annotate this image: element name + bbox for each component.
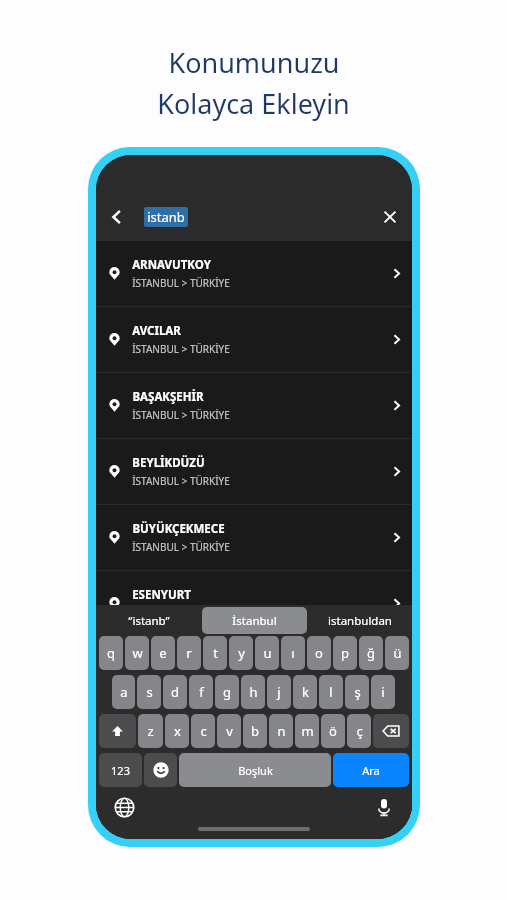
button[interactable]: 123 [99,753,142,787]
staticText: t [213,644,218,662]
button[interactable]: a [112,675,135,709]
button[interactable]: q [99,636,123,670]
staticText: BEYLİKDÜZÜ [132,455,205,471]
staticText: n [277,722,286,740]
staticText: Boşluk [238,763,273,778]
staticText: c [200,722,207,740]
button[interactable]: ş [345,675,369,709]
staticText: y [238,644,245,662]
button[interactable]: u [255,636,279,670]
button[interactable]: Ara [333,753,409,787]
staticText: AVCILAR [132,323,181,339]
button[interactable]: ü [385,636,409,670]
staticText: Ara [362,763,380,778]
button[interactable]: g [215,675,239,709]
button[interactable]: BEYLİKDÜZÜ [96,439,412,504]
staticText: h [249,683,258,701]
staticText: p [341,644,349,662]
button[interactable]: İstanbul [202,607,307,634]
staticText: İSTANBUL > TÜRKİYE [132,474,230,488]
staticText: w [132,644,143,662]
button[interactable]: Shift [99,714,136,748]
button[interactable]: ı [281,636,305,670]
staticText: İSTANBUL > TÜRKİYE [132,342,230,356]
button[interactable]: istanb [138,193,368,241]
button[interactable]: r [177,636,201,670]
button[interactable]: c [191,714,215,748]
button[interactable]: ESENYURT [96,571,412,636]
button[interactable]: Boşluk [179,753,331,787]
button[interactable]: Clear [368,193,412,241]
button[interactable]: AVCILAR [96,307,412,372]
button[interactable]: k [293,675,317,709]
staticText: 123 [111,763,130,778]
button[interactable]: x [165,714,189,748]
staticText: z [147,722,154,740]
button[interactable]: Voice input [370,793,398,821]
staticText: f [199,683,204,701]
staticText: BÜYÜKÇEKMECE [132,521,225,537]
button[interactable]: ARNAVUTKOY [96,241,412,306]
button[interactable]: ö [321,714,345,748]
staticText: istanb [147,208,185,226]
button[interactable]: p [333,636,357,670]
button[interactable]: d [163,675,187,709]
staticText: i [381,683,385,701]
button[interactable]: BÜYÜKÇEKMECE [96,505,412,570]
staticText: “istanb” [128,613,170,629]
button[interactable]: Back [96,193,138,241]
button[interactable]: v [217,714,241,748]
staticText: ş [354,683,361,701]
button[interactable]: l [319,675,343,709]
button[interactable]: n [269,714,293,748]
button[interactable]: h [241,675,265,709]
staticText: İstanbul [232,613,277,629]
button[interactable]: istanbuldan [307,605,412,636]
staticText: İSTANBUL > TÜRKİYE [132,408,230,422]
button[interactable]: ç [347,714,371,748]
staticText: ARNAVUTKOY [132,257,211,273]
button[interactable]: BAŞAKŞEHİR [96,373,412,438]
staticText: İSTANBUL > TÜRKİYE [132,606,230,620]
button[interactable]: j [267,675,291,709]
staticText: x [174,722,181,740]
staticText: d [171,683,179,701]
button[interactable]: “istanb” [96,605,202,636]
staticText: ç [356,722,363,740]
button[interactable]: s [137,675,161,709]
button[interactable]: m [295,714,319,748]
button[interactable]: Backspace [373,714,409,748]
button[interactable]: Change language [110,793,138,821]
staticText: ö [329,722,337,740]
staticText: Kolayca Ekleyin [157,85,350,122]
button[interactable]: Emoji [144,753,177,787]
button[interactable]: e [151,636,175,670]
staticText: BAŞAKŞEHİR [132,389,204,405]
staticText: ğ [367,644,375,662]
button[interactable]: o [307,636,331,670]
button[interactable]: z [138,714,163,748]
staticText: b [251,722,259,740]
staticText: j [277,683,281,701]
staticText: İSTANBUL > TÜRKİYE [132,540,230,554]
staticText: q [107,644,115,662]
staticText: İSTANBUL > TÜRKİYE [132,276,230,290]
staticText: ü [393,644,402,662]
button[interactable]: y [229,636,253,670]
staticText: istanbuldan [328,613,392,629]
button[interactable]: f [189,675,213,709]
staticText: v [226,722,233,740]
button[interactable]: ESENLER [96,637,412,702]
button[interactable]: t [203,636,227,670]
staticText: Konumunuzu [168,44,340,81]
staticText: a [120,683,128,701]
staticText: k [302,683,309,701]
staticText: r [186,644,192,662]
staticText: ı [291,644,295,662]
staticText: l [329,683,333,701]
button[interactable]: w [125,636,149,670]
button[interactable]: ğ [359,636,383,670]
staticText: s [146,683,153,701]
button[interactable]: i [371,675,395,709]
button[interactable]: b [243,714,267,748]
